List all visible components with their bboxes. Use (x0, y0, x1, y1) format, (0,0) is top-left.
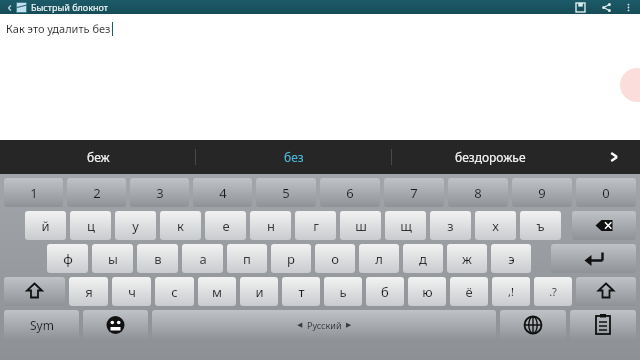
button[interactable]: Shift (576, 277, 636, 306)
staticText: а (199, 250, 207, 268)
button[interactable]: л (359, 244, 399, 273)
staticText: ё (465, 283, 473, 301)
staticText: я (85, 283, 93, 301)
button[interactable]: Enter (551, 244, 636, 273)
button[interactable]: без (196, 140, 392, 174)
staticText: м (212, 283, 222, 301)
button[interactable]: бездорожье (392, 140, 588, 174)
button[interactable]: Backspace (572, 211, 636, 240)
staticText: л (375, 250, 383, 268)
button[interactable]: ш (340, 211, 381, 240)
staticText: 2 (93, 184, 101, 202)
button[interactable]: Change language (500, 310, 566, 340)
staticText: бездорожье (455, 149, 526, 165)
staticText: ч (128, 283, 136, 301)
button[interactable]: Share (593, 0, 619, 14)
button[interactable]: 8 (448, 178, 508, 207)
staticText: .? (549, 284, 557, 299)
staticText: Русский (307, 319, 342, 331)
button[interactable]: 4 (193, 178, 252, 207)
staticText: р (287, 250, 295, 268)
staticText: й (41, 217, 50, 235)
button[interactable]: беж (0, 140, 196, 174)
button[interactable]: с (155, 277, 194, 306)
button[interactable]: р (271, 244, 311, 273)
staticText: ы (108, 250, 118, 268)
button[interactable]: б (366, 277, 404, 306)
staticText: Sym (30, 317, 54, 333)
button[interactable]: ж (447, 244, 487, 273)
button[interactable]: г (295, 211, 336, 240)
button[interactable]: ц (70, 211, 111, 240)
staticText: 1 (30, 184, 38, 202)
button[interactable]: е (205, 211, 246, 240)
staticText: о (331, 250, 339, 268)
button[interactable]: й (25, 211, 66, 240)
button[interactable]: 9 (512, 178, 572, 207)
button[interactable]: в (137, 244, 178, 273)
button[interactable]: я (69, 277, 108, 306)
button[interactable]: More suggestions (588, 140, 640, 174)
button[interactable]: .? (534, 277, 572, 306)
staticText: ш (355, 217, 367, 235)
button[interactable]: Clipboard (570, 310, 636, 340)
staticText: и (255, 283, 264, 301)
button[interactable]: и (240, 277, 278, 306)
button[interactable]: у (115, 211, 156, 240)
button[interactable]: 0 (576, 178, 636, 207)
staticText: к (177, 217, 184, 235)
button[interactable]: ф (47, 244, 88, 273)
button[interactable]: п (227, 244, 267, 273)
staticText: 8 (474, 184, 482, 202)
button[interactable]: ь (324, 277, 362, 306)
button[interactable]: Space, Русский (152, 310, 496, 340)
button[interactable]: Emoji (83, 310, 148, 340)
button[interactable]: ы (92, 244, 133, 273)
button[interactable]: Sym (4, 310, 79, 340)
staticText: с (171, 283, 178, 301)
button[interactable]: о (315, 244, 355, 273)
button[interactable]: э (491, 244, 531, 273)
button[interactable]: щ (385, 211, 426, 240)
button[interactable]: Shift (4, 277, 65, 306)
button[interactable]: 1 (4, 178, 63, 207)
staticText: 5 (282, 184, 290, 202)
staticText: ю (422, 283, 433, 301)
staticText: у (132, 217, 139, 235)
button[interactable]: ъ (520, 211, 561, 240)
button[interactable]: ё (450, 277, 488, 306)
button[interactable]: 2 (67, 178, 126, 207)
button[interactable]: д (403, 244, 443, 273)
button[interactable]: ю (408, 277, 446, 306)
staticText: 3 (156, 184, 164, 202)
button[interactable]: 5 (256, 178, 316, 207)
staticText: беж (87, 149, 110, 165)
staticText: т (298, 283, 305, 301)
button[interactable]: 7 (384, 178, 444, 207)
staticText: 6 (346, 184, 354, 202)
staticText: ф (63, 250, 73, 268)
button[interactable]: н (250, 211, 291, 240)
button[interactable]: ч (112, 277, 151, 306)
staticText: в (154, 250, 162, 268)
button[interactable]: к (160, 211, 201, 240)
button[interactable]: м (198, 277, 236, 306)
button[interactable]: 6 (320, 178, 380, 207)
staticText: э (508, 250, 515, 268)
staticText: н (267, 217, 275, 235)
button[interactable]: а (182, 244, 223, 273)
staticText: щ (400, 217, 412, 235)
staticText: е (222, 217, 230, 235)
button[interactable]: 3 (130, 178, 189, 207)
button[interactable]: х (475, 211, 516, 240)
staticText: Как это удалить без (6, 21, 111, 36)
staticText: х (492, 217, 499, 235)
button[interactable]: Back (3, 1, 16, 14)
button[interactable]: ,! (492, 277, 530, 306)
button[interactable]: Save (567, 0, 593, 14)
button[interactable]: т (282, 277, 320, 306)
button[interactable]: з (430, 211, 471, 240)
staticText: 0 (602, 184, 610, 202)
button[interactable]: More options (619, 0, 637, 14)
staticText: ж (462, 250, 472, 268)
